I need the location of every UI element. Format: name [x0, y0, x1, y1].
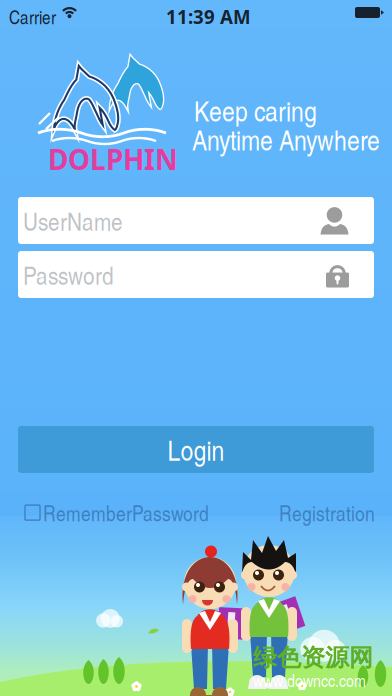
button[interactable]: Registration [279, 498, 379, 527]
staticText: DOLPHIN [48, 140, 178, 178]
staticText: 绿色资源网 [253, 643, 373, 672]
staticText: UserName [23, 203, 123, 238]
staticText: 11:39 AM [166, 4, 251, 29]
staticText: Registration [279, 498, 375, 527]
staticText: www.downcc.com [253, 668, 366, 692]
staticText: Keep caring [194, 91, 317, 129]
staticText: Anytime Anywhere [192, 120, 380, 158]
staticText: Login [167, 430, 224, 469]
staticText: Carrier [9, 4, 56, 30]
button[interactable]: RememberPassword [25, 498, 213, 527]
staticText: RememberPassword [43, 498, 209, 527]
button[interactable]: Login [18, 426, 374, 473]
staticText: Password [23, 257, 114, 292]
